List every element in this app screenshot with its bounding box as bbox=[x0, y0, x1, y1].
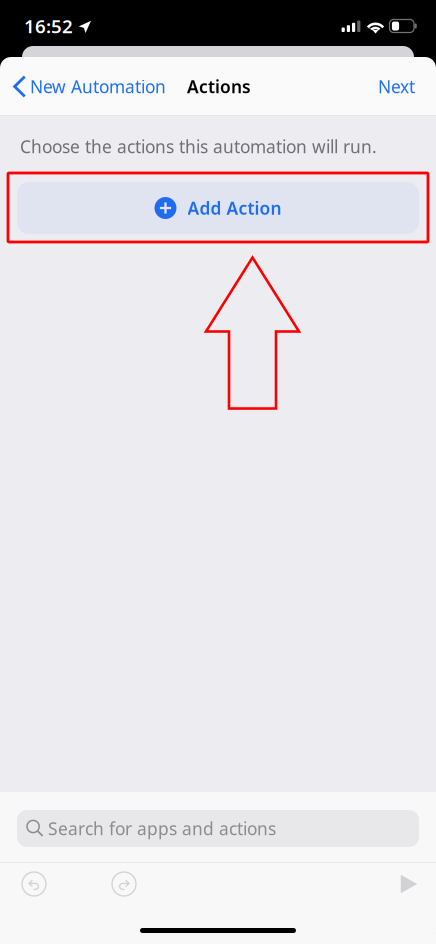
button[interactable]: Add Action bbox=[17, 182, 419, 234]
staticText: 16:52 bbox=[24, 14, 73, 38]
button[interactable]: New Automation bbox=[0, 67, 166, 106]
staticText: Add Action bbox=[187, 196, 281, 219]
staticText: Choose the actions this automation will … bbox=[20, 135, 377, 158]
staticText: Actions bbox=[187, 75, 251, 98]
button[interactable]: Run bbox=[392, 866, 426, 902]
button[interactable]: Search for apps and actions bbox=[17, 810, 419, 847]
staticText: Search for apps and actions bbox=[48, 817, 276, 840]
button[interactable]: Redo bbox=[103, 863, 145, 905]
staticText: Next bbox=[378, 75, 415, 98]
button[interactable]: Next bbox=[378, 67, 436, 106]
button[interactable]: Undo bbox=[13, 863, 55, 905]
staticText: New Automation bbox=[30, 75, 166, 98]
